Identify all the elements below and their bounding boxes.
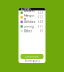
staticText: Terms apply [24,59,39,63]
staticText: Continue [25,55,39,58]
staticText: Transport [24,14,35,21]
staticText: $12 [37,15,43,19]
staticText: Groceries [24,9,35,16]
staticText: $24 [37,11,43,14]
staticText: Other [24,29,32,33]
staticText: Dining [24,25,34,28]
staticText: $9 [39,29,43,33]
button[interactable]: Continue [20,54,43,59]
staticText: Utilities [24,20,35,24]
staticText: $48 [37,20,43,24]
staticText: Summary [20,7,30,11]
staticText: $31 [37,25,43,28]
